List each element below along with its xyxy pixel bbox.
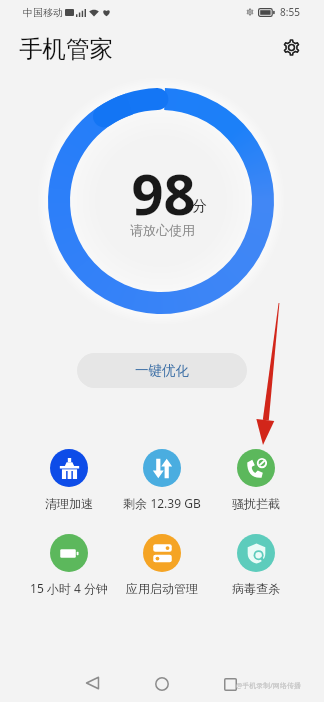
staticText: 8:55: [280, 5, 300, 19]
staticText: 分: [192, 197, 207, 216]
button[interactable]: 应用启动管理: [112, 534, 212, 596]
staticText: 中国移动: [23, 6, 63, 19]
staticText: 病毒查杀: [232, 581, 280, 596]
staticText: 骚扰拦截: [232, 496, 280, 511]
button[interactable]: 主页: [140, 662, 184, 702]
staticText: 一键优化: [135, 362, 189, 379]
button[interactable]: 剩余 12.39 GB: [112, 449, 212, 511]
staticText: @手机录制/网络传播: [236, 681, 301, 691]
button[interactable]: 返回: [70, 661, 114, 702]
button[interactable]: 清理加速: [19, 449, 119, 511]
button[interactable]: 骚扰拦截: [206, 449, 306, 511]
staticText: 剩余 12.39 GB: [123, 495, 201, 511]
staticText: 15 小时 4 分钟: [30, 580, 108, 596]
button[interactable]: 一键优化: [77, 353, 247, 388]
staticText: 98: [131, 155, 196, 231]
staticText: 请放心使用: [130, 222, 195, 238]
staticText: 清理加速: [45, 496, 93, 511]
button[interactable]: 病毒查杀: [206, 534, 306, 596]
button[interactable]: 设置: [276, 32, 306, 62]
staticText: 手机管家: [19, 34, 113, 64]
button[interactable]: 最近任务: [208, 662, 252, 702]
staticText: 应用启动管理: [126, 581, 198, 596]
button[interactable]: 15 小时 4 分钟: [19, 534, 119, 596]
